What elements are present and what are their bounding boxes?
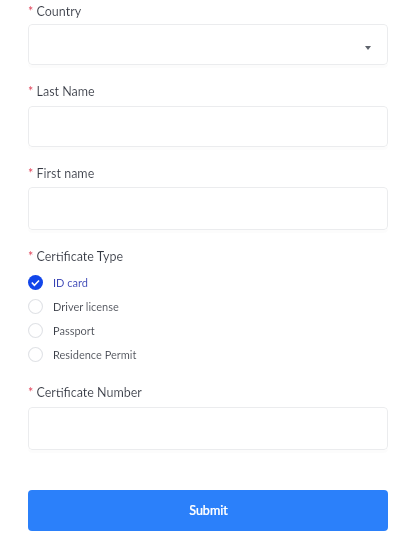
- button[interactable]: Certificate Number: [28, 407, 388, 450]
- other: Open country list: [365, 46, 371, 50]
- staticText: * First name: [28, 166, 95, 181]
- staticText: Residence Permit: [53, 348, 137, 361]
- staticText: ID card: [53, 276, 88, 289]
- staticText: Submit: [189, 503, 228, 518]
- button[interactable]: Driver license: [28, 294, 388, 318]
- button[interactable]: Country: [28, 24, 388, 65]
- button[interactable]: Residence Permit: [28, 342, 388, 366]
- button[interactable]: Submit: [28, 490, 388, 531]
- staticText: * Certificate Type: [28, 249, 124, 264]
- staticText: * Certificate Number: [28, 385, 142, 400]
- staticText: Passport: [53, 324, 95, 337]
- staticText: * Country: [28, 4, 82, 19]
- button[interactable]: Passport: [28, 318, 388, 342]
- staticText: Driver license: [53, 300, 119, 313]
- staticText: * Last Name: [28, 84, 95, 99]
- button[interactable]: Last Name: [28, 106, 388, 147]
- button[interactable]: First name: [28, 187, 388, 230]
- button[interactable]: ID card: [28, 270, 388, 294]
